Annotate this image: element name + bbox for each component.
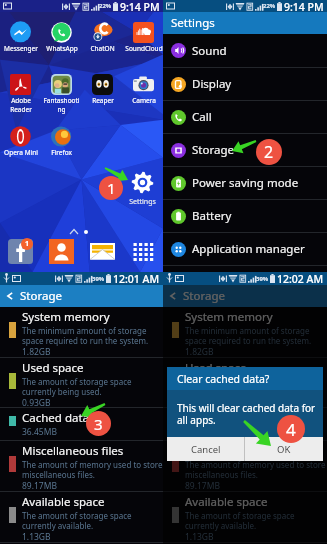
button[interactable]: SoundCloud [123,22,164,53]
staticText: 9:14 PM [284,0,324,12]
staticText: Settings [171,15,215,31]
button[interactable]: Camera [123,74,164,105]
staticText: 0.93GB [185,397,214,407]
staticText: The minimum amount of storage space requ… [185,325,312,346]
staticText: Cached data [22,410,90,426]
button[interactable]: System memory [0,307,163,357]
button[interactable]: WhatsApp [41,22,82,53]
staticText: SoundCloud [125,44,163,53]
staticText: OK [277,443,291,456]
button[interactable]: Back [0,285,163,307]
staticText: Storage [20,288,62,304]
staticText: Power saving mode [192,175,299,191]
button[interactable]: Back [163,285,327,307]
button[interactable]: Sound [163,34,327,67]
staticText: 36.45MB [185,426,220,438]
staticText: Used space [185,360,247,376]
staticText: Storage [192,142,234,158]
button[interactable]: Messenger [0,22,41,53]
staticText: 1.13GB [22,531,51,542]
staticText: 1 [107,178,116,198]
button[interactable]: contacts [49,239,74,264]
staticText: The amount of storage space currently av… [22,510,132,531]
staticText: 39% [92,275,105,283]
button[interactable]: System memory [163,307,327,357]
button[interactable]: Storage [163,134,327,166]
button[interactable]: Display [163,68,327,100]
staticText: The amount of storage space currently av… [185,510,295,531]
staticText: 22% [263,2,276,10]
button[interactable]: apps [131,239,156,264]
button[interactable]: Cached data [0,408,163,440]
staticText: 89.17MB [185,480,220,491]
button[interactable]: Cancel [167,437,244,461]
staticText: 1.13GB [185,531,214,542]
staticText: Miscellaneous files [185,443,287,459]
staticText: Available space [185,494,268,510]
staticText: Application manager [192,241,305,257]
staticText: Sound [192,43,227,59]
staticText: 1.82GB [22,346,51,357]
staticText: 1 [25,239,30,249]
staticText: 2 [264,141,274,163]
button[interactable]: Settings [131,171,154,194]
staticText: Display [192,76,232,92]
staticText: 1.82GB [185,346,214,357]
button[interactable]: Available space [163,492,327,542]
staticText: 39% [256,275,269,283]
staticText: System memory [185,309,273,325]
staticText: 3 [94,414,103,434]
button[interactable]: Used space [0,358,163,407]
button[interactable]: Reaper [82,74,123,105]
staticText: 9:14 PM [120,0,160,12]
button[interactable]: Application manager [163,233,327,265]
button[interactable]: Adobe Reader [0,74,41,114]
staticText: Clear cached data? [177,372,270,386]
staticText: Battery [192,208,232,224]
button[interactable]: Power saving mode [163,167,327,199]
staticText: The amount of storage space currently be… [185,376,295,397]
staticText: Firefox [51,148,72,157]
staticText: 12:01 AM [113,272,160,285]
staticText: The amount of memory used to store misce… [22,459,163,480]
button[interactable]: Available space [0,492,163,542]
staticText: The amount of storage space currently be… [22,376,132,397]
button[interactable]: fb [8,239,33,264]
button[interactable]: Call [163,101,327,133]
staticText: Adobe Reader [10,96,32,114]
staticText: Settings [120,197,165,207]
staticText: 36.45MB [22,426,57,438]
button[interactable]: Opera Mini [0,126,41,157]
button[interactable]: Fantashooti ng [41,74,82,114]
staticText: 4 [286,418,296,441]
button[interactable]: Cached data [163,408,327,440]
staticText: Cancel [191,443,221,456]
staticText: Opera Mini [4,148,38,157]
staticText: Cached data [185,410,253,426]
staticText: 12:02 AM [277,272,324,285]
button[interactable]: email [90,239,115,264]
staticText: Used space [22,360,84,376]
staticText: Camera [132,96,156,105]
staticText: 22% [99,2,112,10]
button[interactable]: Used space [163,358,327,407]
button[interactable]: Settings [163,12,327,34]
staticText: Fantashooti ng [43,96,80,114]
staticText: The amount of memory used to store misce… [185,459,326,480]
button[interactable]: Miscellaneous files [163,441,327,491]
staticText: 0.93GB [22,397,51,407]
staticText: Storage [183,288,225,304]
staticText: Available space [22,494,105,510]
button[interactable]: Firefox [41,126,82,157]
staticText: The minimum amount of storage space requ… [22,325,149,346]
staticText: This will clear cached data for all apps… [177,401,316,427]
staticText: ChatON [90,44,115,53]
staticText: Call [192,109,212,125]
button[interactable]: OK [245,437,323,461]
staticText: WhatsApp [46,44,78,53]
staticText: Reaper [92,96,114,105]
button[interactable]: ChatON [82,22,123,53]
staticText: Messenger [4,44,38,53]
button[interactable]: Battery [163,200,327,232]
button[interactable]: Miscellaneous files [0,441,163,491]
